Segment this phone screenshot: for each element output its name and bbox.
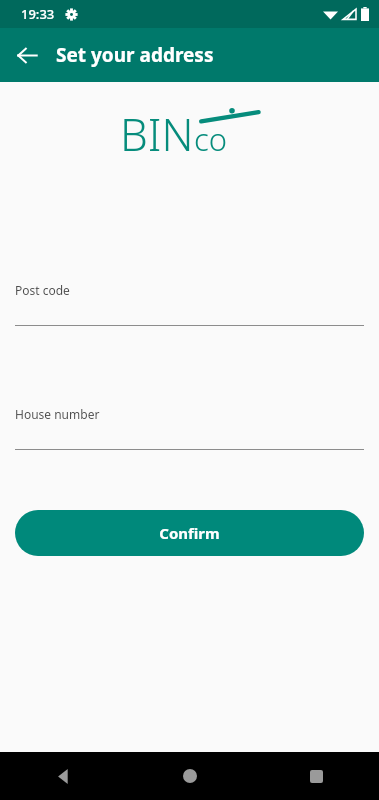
button[interactable]: Back xyxy=(0,752,127,800)
staticText: Post code xyxy=(15,282,70,298)
button[interactable]: Post code xyxy=(0,282,379,326)
staticText: 19:33 xyxy=(21,5,55,23)
staticText: BIN xyxy=(120,104,194,162)
button[interactable]: Back xyxy=(8,36,46,74)
button[interactable]: Home xyxy=(127,752,253,800)
staticText: House number xyxy=(15,406,100,422)
button[interactable]: Recent apps xyxy=(253,752,379,800)
staticText: Confirm xyxy=(159,523,220,543)
staticText: Set your address xyxy=(56,42,214,68)
button[interactable]: House number xyxy=(0,406,379,450)
staticText: co xyxy=(194,118,228,160)
button[interactable]: Confirm xyxy=(15,510,364,556)
